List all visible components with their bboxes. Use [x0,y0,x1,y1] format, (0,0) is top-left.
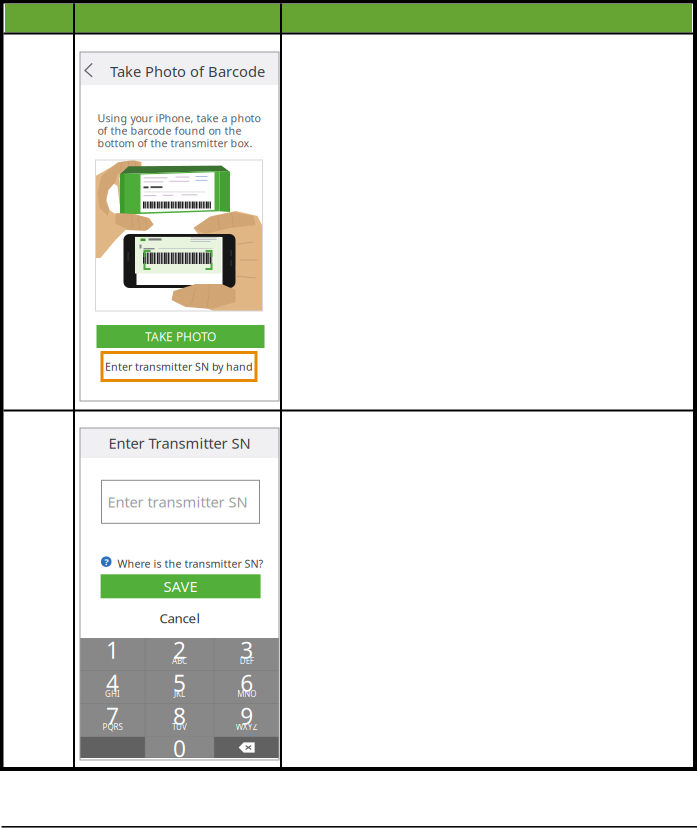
button[interactable]: 4 [80,671,145,703]
staticText: 6 [240,668,253,698]
staticText: Using your iPhone, take a photo [97,111,260,125]
button[interactable]: Take Photo of Barcode [80,52,279,85]
staticText: JKL [174,689,185,699]
staticText: of the barcode found on the [97,124,241,138]
staticText [178,754,180,765]
button[interactable]: 6 [214,671,279,703]
button[interactable]: 8 [145,704,214,736]
staticText: Where is the transmitter SN? [117,556,263,571]
button[interactable]: 1 [80,638,145,670]
staticText: 1 [106,635,119,665]
staticText: Cancel [159,609,199,627]
button[interactable]: 9 [214,704,279,736]
staticText [111,656,113,666]
staticText: MNO [237,689,256,699]
staticText: Enter transmitter SN by hand [105,359,253,374]
button[interactable]: 2 [145,638,214,670]
button[interactable]: 3 [214,638,279,670]
staticText: 3 [240,635,253,665]
staticText: 0 [173,733,186,763]
button[interactable]: Delete [214,737,279,758]
button[interactable]: Enter transmitter SN by hand [102,352,256,380]
staticText: ? [104,555,108,568]
staticText: 4 [106,668,119,698]
staticText: bottom of the transmitter box. [97,136,252,150]
button[interactable]: Cancel [144,610,214,626]
staticText: 5 [173,668,186,698]
staticText: 7 [106,701,119,731]
staticText: SAVE [164,577,198,596]
staticText: Take Photo of Barcode [110,61,265,81]
staticText: DEF [240,656,254,666]
staticText: 8 [173,701,186,731]
staticText: TAKE PHOTO [145,328,216,344]
button[interactable]: ? [101,556,259,569]
button[interactable]: 0 [145,737,214,758]
staticText: 9 [240,701,253,731]
staticText: Enter Transmitter SN [108,433,250,453]
staticText: TUV [172,722,187,732]
staticText: ABC [172,656,187,666]
button[interactable]: SAVE [101,574,261,598]
staticText: Enter transmitter SN [107,492,247,512]
staticText: PQRS [102,722,122,732]
staticText: GHI [105,689,120,699]
staticText: 2 [173,635,186,665]
button[interactable]: TAKE PHOTO [96,325,264,348]
button[interactable]: Enter transmitter SN [101,480,259,523]
button[interactable]: 5 [145,671,214,703]
staticText: WXYZ [236,722,258,732]
button[interactable]: 7 [80,704,145,736]
